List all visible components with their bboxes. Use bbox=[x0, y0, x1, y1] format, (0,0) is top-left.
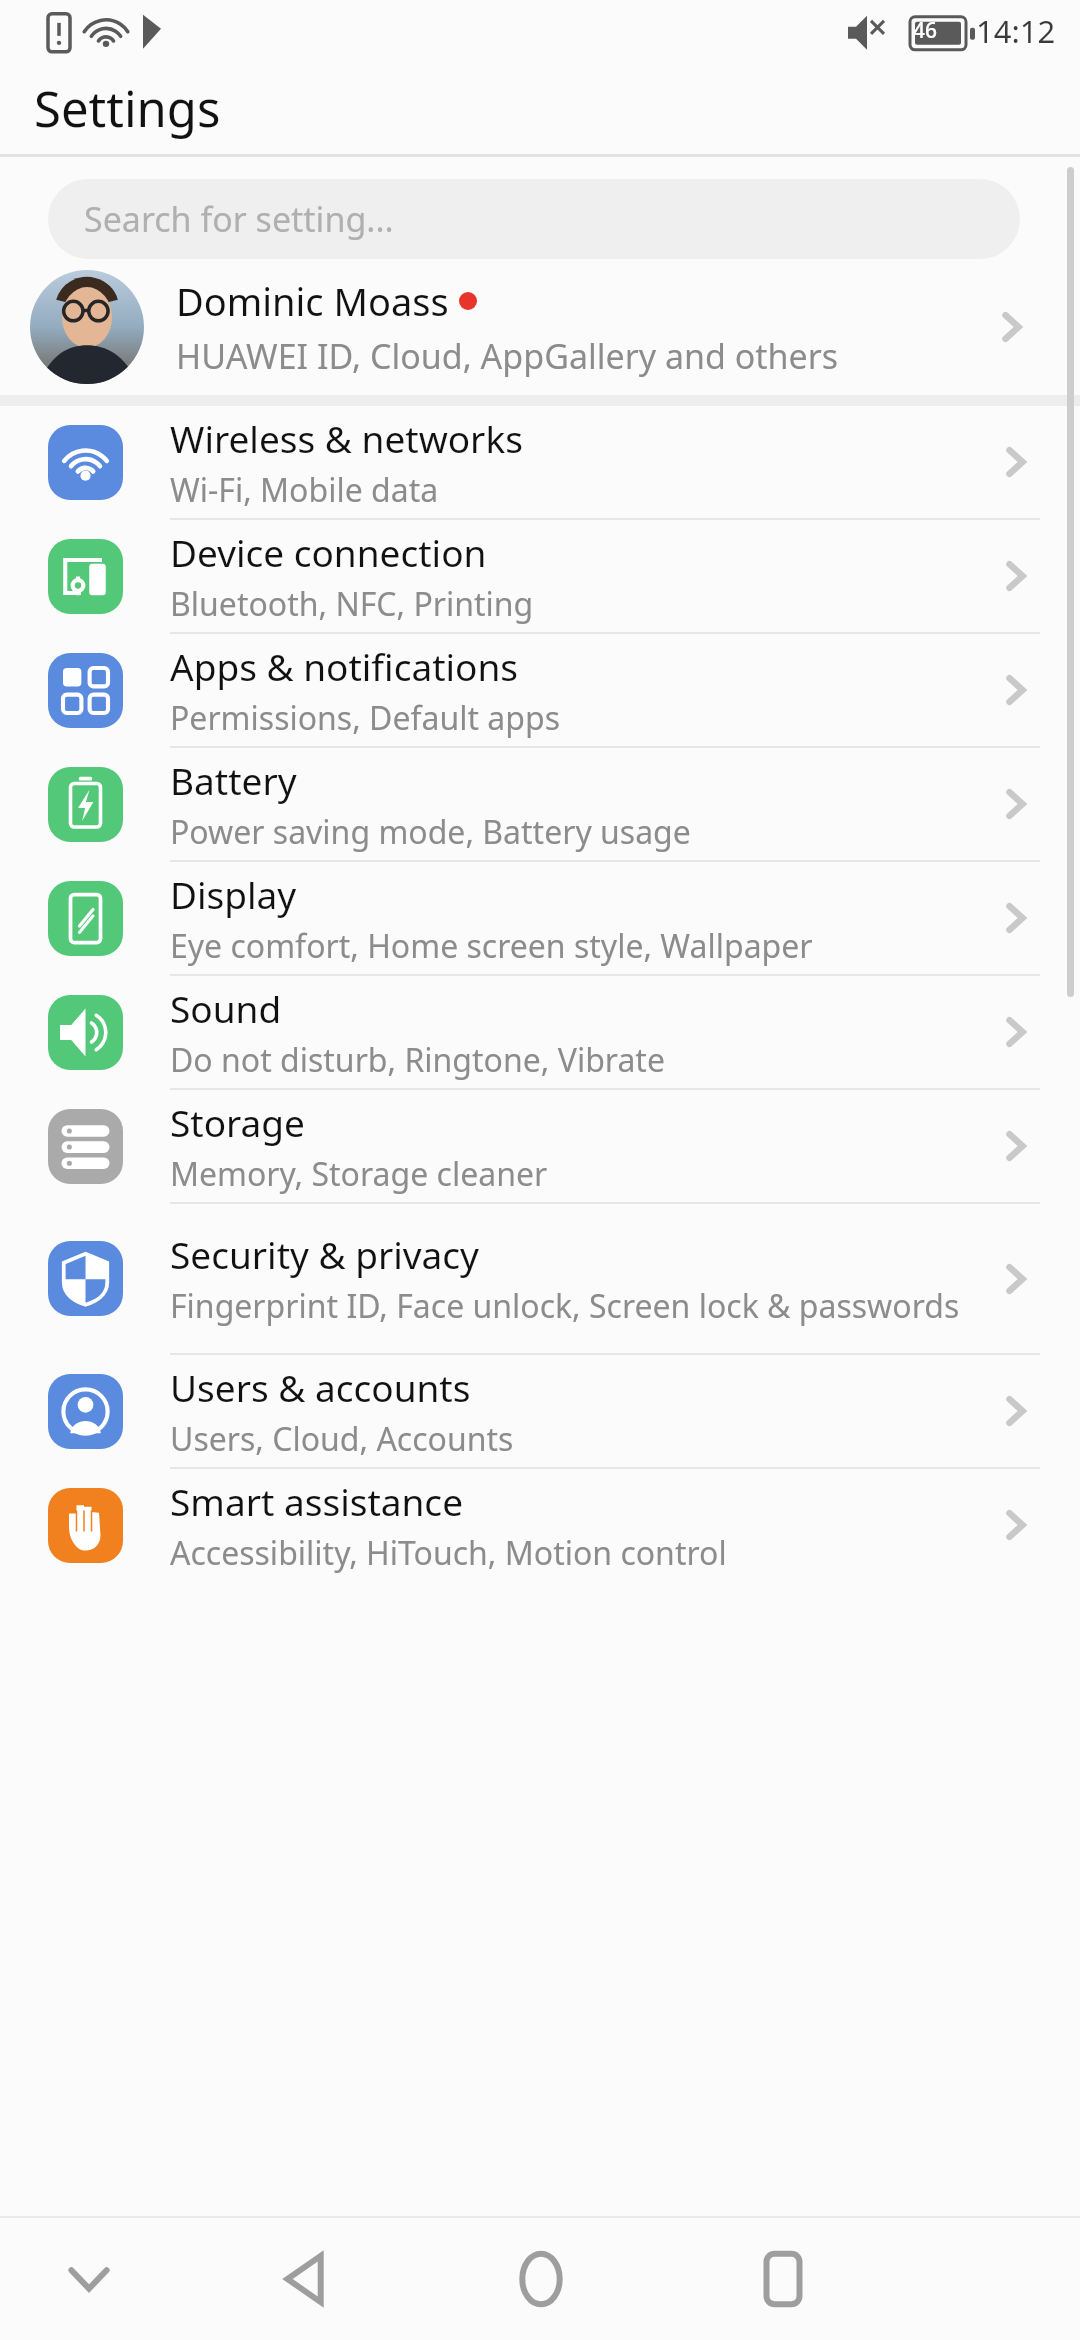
button[interactable]: Sound bbox=[0, 976, 1080, 1088]
button[interactable]: Back bbox=[250, 2224, 360, 2334]
button[interactable]: Security & privacy bbox=[0, 1204, 1080, 1353]
button[interactable]: Home bbox=[486, 2224, 596, 2334]
staticText: Accessibility, HiTouch, Motion control bbox=[170, 1531, 727, 1575]
staticText: Permissions, Default apps bbox=[170, 696, 560, 740]
button[interactable]: Recents bbox=[728, 2224, 838, 2334]
staticText: Users & accounts bbox=[170, 1362, 471, 1412]
staticText: Display bbox=[170, 869, 297, 919]
staticText: Wireless & networks bbox=[170, 413, 523, 463]
staticText: HUAWEI ID, Cloud, AppGallery and others bbox=[176, 333, 839, 379]
button[interactable]: Apps & notifications bbox=[0, 634, 1080, 746]
staticText: Sound bbox=[170, 983, 282, 1033]
button[interactable]: Storage bbox=[0, 1090, 1080, 1202]
staticText: Apps & notifications bbox=[170, 641, 519, 691]
staticText: Users, Cloud, Accounts bbox=[170, 1417, 514, 1461]
staticText: Device connection bbox=[170, 527, 487, 577]
staticText: Smart assistance bbox=[170, 1476, 464, 1526]
staticText: Wi-Fi, Mobile data bbox=[170, 468, 439, 512]
button[interactable]: Battery bbox=[0, 748, 1080, 860]
staticText: Battery bbox=[170, 755, 297, 805]
staticText: Bluetooth, NFC, Printing bbox=[170, 582, 534, 626]
button[interactable]: Users & accounts bbox=[0, 1355, 1080, 1467]
button[interactable]: Hide keyboard bbox=[34, 2224, 144, 2334]
button[interactable]: Search for setting... bbox=[48, 179, 1020, 259]
staticText: Memory, Storage cleaner bbox=[170, 1152, 548, 1196]
staticText: Settings bbox=[34, 75, 221, 142]
staticText: 46 bbox=[913, 16, 938, 45]
staticText: 14:12 bbox=[976, 10, 1056, 52]
staticText: Fingerprint ID, Face unlock, Screen lock… bbox=[170, 1284, 960, 1328]
staticText: Dominic Moass bbox=[176, 275, 449, 327]
staticText: Do not disturb, Ringtone, Vibrate bbox=[170, 1038, 665, 1082]
staticText: Eye comfort, Home screen style, Wallpape… bbox=[170, 924, 813, 968]
staticText: Security & privacy bbox=[170, 1229, 479, 1279]
staticText: Search for setting... bbox=[84, 196, 394, 242]
button[interactable]: Device connection bbox=[0, 520, 1080, 632]
staticText: Storage bbox=[170, 1097, 305, 1147]
button[interactable]: Dominic Moass bbox=[0, 259, 1080, 395]
button[interactable]: Wireless & networks bbox=[0, 406, 1080, 518]
staticText: Power saving mode, Battery usage bbox=[170, 810, 691, 854]
button[interactable]: Display bbox=[0, 862, 1080, 974]
button[interactable]: Smart assistance bbox=[0, 1469, 1080, 1581]
